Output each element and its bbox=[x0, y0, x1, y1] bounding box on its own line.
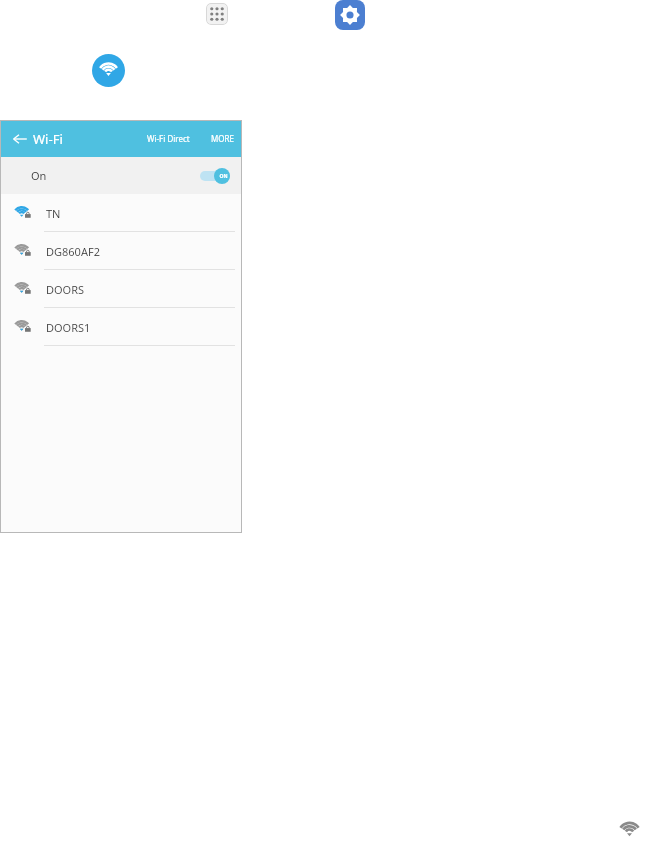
button[interactable]: DOORS1 bbox=[0, 308, 242, 346]
staticText: DOORS bbox=[46, 282, 85, 297]
staticText: ON bbox=[219, 173, 228, 180]
button[interactable]: DG860AF2 bbox=[0, 232, 242, 270]
staticText: DOORS1 bbox=[46, 320, 91, 335]
button[interactable]: On bbox=[0, 157, 242, 194]
other: Wi-Fi bbox=[617, 817, 642, 842]
staticText: Wi-Fi bbox=[33, 130, 63, 148]
button[interactable]: TN bbox=[0, 194, 242, 232]
button[interactable]: Back bbox=[10, 129, 30, 149]
staticText: Wi-Fi Direct bbox=[147, 133, 190, 144]
staticText: On bbox=[31, 168, 47, 183]
button[interactable]: Wi-Fi bbox=[92, 54, 125, 87]
staticText: DG860AF2 bbox=[46, 244, 100, 259]
staticText: TN bbox=[46, 206, 61, 221]
button[interactable]: Wi-Fi on bbox=[200, 168, 230, 184]
button[interactable]: Apps bbox=[206, 3, 228, 25]
button[interactable]: Wi-Fi Direct bbox=[147, 133, 190, 144]
button[interactable]: DOORS bbox=[0, 270, 242, 308]
button[interactable]: MORE bbox=[211, 133, 234, 144]
button[interactable]: Settings bbox=[335, 0, 365, 30]
staticText: MORE bbox=[211, 133, 234, 144]
